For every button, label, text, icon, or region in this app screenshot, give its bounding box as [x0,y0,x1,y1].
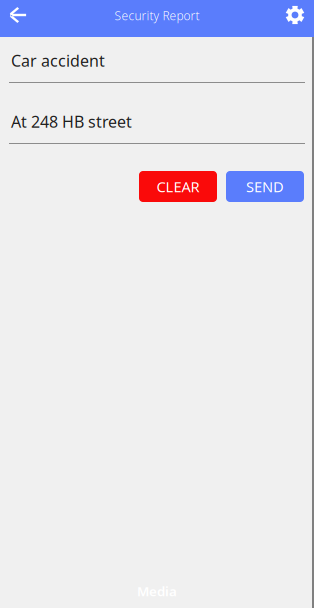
button[interactable]: At 248 HB street [0,83,314,144]
staticText: At 248 HB street [11,111,132,132]
staticText: SEND [246,177,284,196]
button[interactable]: Car accident [0,37,314,83]
button[interactable]: Back [3,0,33,30]
button[interactable]: SEND [226,171,304,202]
button[interactable]: CLEAR [139,171,217,202]
staticText: Security Report [114,7,199,23]
staticText: CLEAR [156,177,199,196]
button[interactable]: Settings [280,0,310,30]
staticText: Car accident [11,50,105,71]
staticText: Media [137,582,177,600]
